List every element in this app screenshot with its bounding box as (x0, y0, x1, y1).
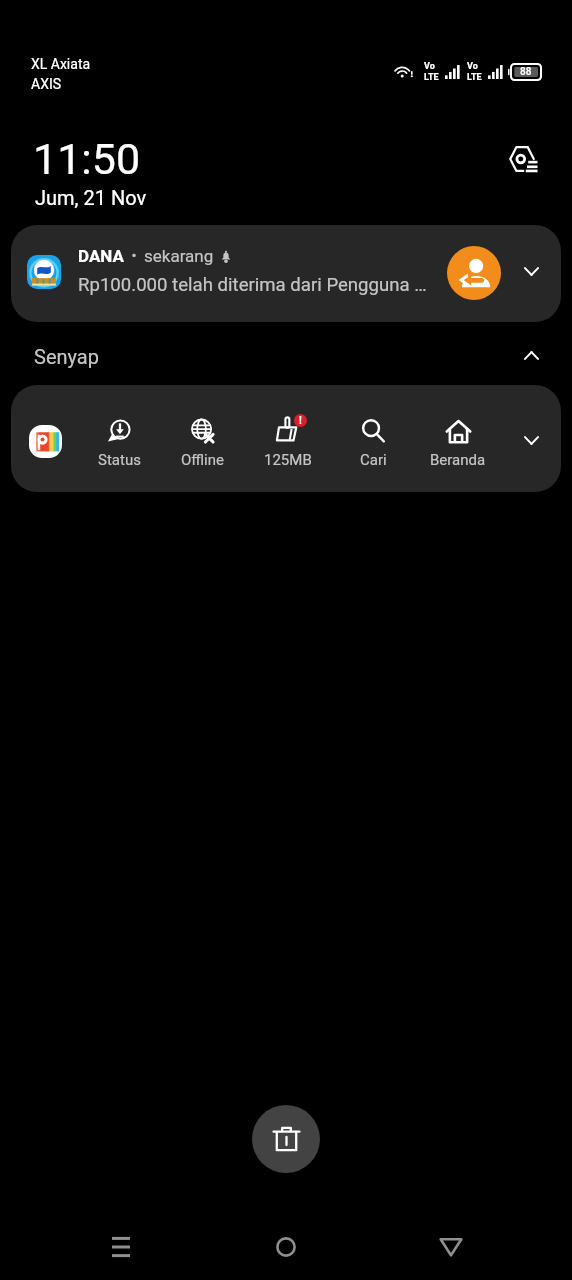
button[interactable]: Notification settings (504, 139, 544, 179)
button[interactable]: Clear all notifications (252, 1105, 320, 1173)
staticText: Cari (360, 451, 387, 469)
button[interactable]: Transfer money (447, 246, 501, 300)
button[interactable]: Status (11, 385, 561, 492)
staticText: Offline (181, 451, 225, 469)
staticText: Beranda (430, 451, 486, 469)
button[interactable]: ! (248, 418, 328, 469)
staticText: DANA (78, 246, 124, 266)
button[interactable]: Expand notification (511, 251, 551, 291)
staticText: AXIS (31, 76, 62, 92)
button[interactable]: Cari (333, 418, 413, 469)
button[interactable]: Beranda (418, 418, 498, 469)
staticText: Vo (424, 61, 435, 72)
staticText: Rp100.000 telah diterima dari Pengguna … (78, 274, 427, 296)
staticText: sekarang (144, 246, 214, 266)
staticText: Jum, 21 Nov (35, 186, 147, 209)
staticText: 11:50 (33, 134, 141, 184)
staticText: XL Axiata (31, 56, 91, 72)
staticText: 88 (520, 66, 532, 78)
button[interactable]: Recent apps (89, 1215, 153, 1279)
staticText: • (124, 247, 144, 265)
button[interactable]: Home (254, 1215, 318, 1279)
staticText: ! (299, 415, 302, 427)
button[interactable]: Status (79, 418, 159, 469)
button[interactable]: Back (419, 1215, 483, 1279)
staticText: 125MB (264, 451, 312, 469)
staticText: Status (98, 451, 141, 469)
staticText: Senyap (34, 345, 99, 368)
button[interactable]: Expand notification (511, 420, 551, 460)
staticText: LTE (424, 72, 439, 83)
staticText: Vo (467, 61, 478, 72)
staticText: LTE (467, 72, 482, 83)
button[interactable]: Senyap (0, 336, 572, 378)
button[interactable]: Offline (163, 418, 243, 469)
button[interactable]: DANA (11, 225, 561, 322)
